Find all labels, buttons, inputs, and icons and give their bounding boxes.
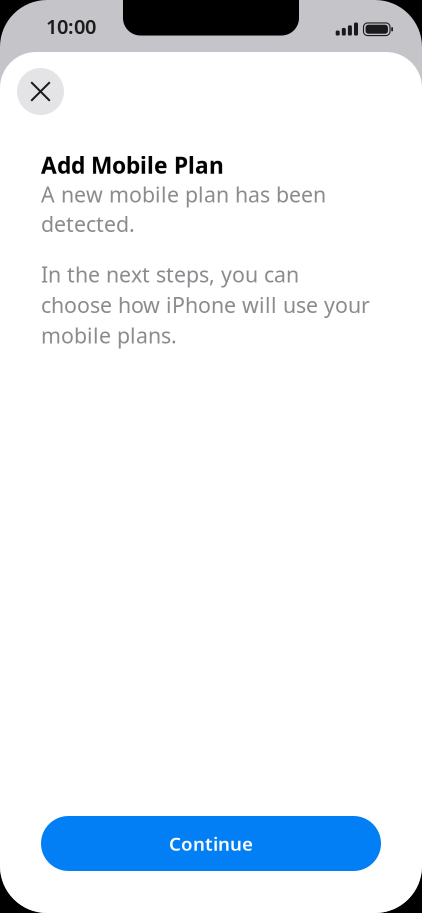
staticText: A new mobile plan has been detected. [41, 180, 326, 238]
staticText: 10:00 [46, 13, 96, 40]
staticText: Continue [169, 831, 253, 856]
button[interactable]: Close [17, 68, 64, 115]
staticText: In the next steps, you can choose how iP… [41, 260, 370, 349]
staticText: Add Mobile Plan [41, 150, 224, 180]
button[interactable]: Continue [41, 816, 381, 871]
